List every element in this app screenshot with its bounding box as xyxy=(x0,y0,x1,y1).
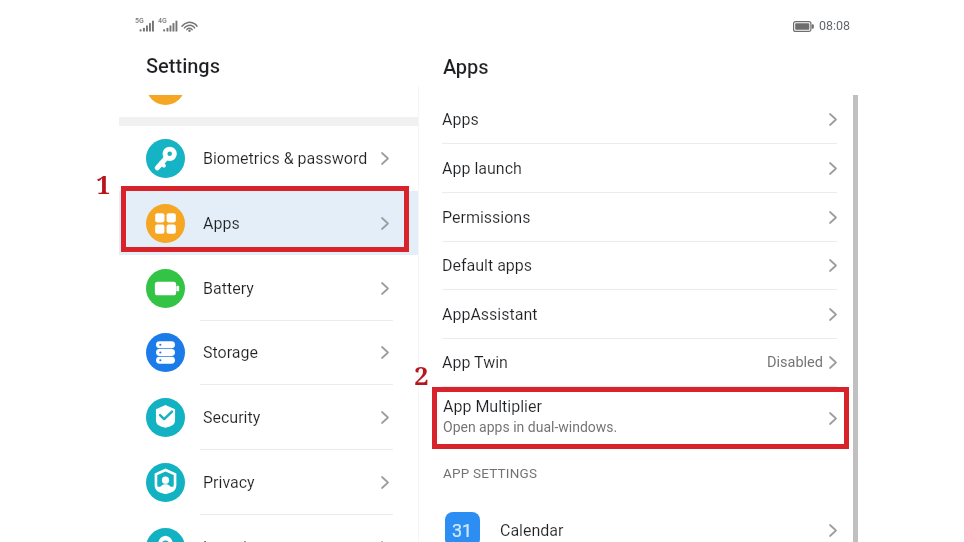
button[interactable]: Apps xyxy=(119,191,418,255)
staticText: Biometrics & password xyxy=(203,149,368,168)
staticText: Disabled xyxy=(767,354,823,371)
staticText: App launch xyxy=(442,159,522,178)
staticText: Privacy xyxy=(203,473,255,492)
staticText: Settings xyxy=(146,54,221,77)
staticText: Default apps xyxy=(442,256,533,275)
staticText: Apps xyxy=(443,55,489,78)
staticText: 2 xyxy=(414,357,429,392)
button[interactable]: Permissions xyxy=(419,193,853,241)
staticText: 5G xyxy=(135,17,144,25)
staticText: Calendar xyxy=(500,521,564,540)
staticText: 31 xyxy=(452,520,473,541)
button[interactable]: App Multiplier xyxy=(419,389,853,448)
staticText: Permissions xyxy=(442,208,531,227)
staticText: APP SETTINGS xyxy=(443,465,538,481)
staticText: Battery xyxy=(203,279,254,298)
staticText: Open apps in dual-windows. xyxy=(443,419,618,435)
button[interactable]: Security xyxy=(119,385,418,449)
staticText: 4G xyxy=(158,17,167,25)
button[interactable]: Storage xyxy=(119,320,418,384)
button[interactable]: AppAssistant xyxy=(419,290,853,338)
button[interactable]: Default apps xyxy=(419,241,853,289)
button[interactable]: Privacy xyxy=(119,450,418,514)
staticText: AppAssistant xyxy=(442,305,538,324)
staticText: 08:08 xyxy=(819,18,851,33)
button[interactable]: App Twin xyxy=(419,338,853,386)
other: Annotation 1 highlight xyxy=(121,186,409,252)
staticText: Location xyxy=(203,538,265,542)
staticText: Apps xyxy=(442,110,479,129)
staticText: Storage xyxy=(203,343,258,362)
other: Annotation 2 highlight xyxy=(432,387,849,449)
button[interactable]: Location xyxy=(119,515,418,542)
staticText: 1 xyxy=(96,166,111,201)
button[interactable]: Apps xyxy=(419,95,853,143)
staticText: App Multiplier xyxy=(443,397,542,416)
button[interactable]: App launch xyxy=(419,144,853,192)
button[interactable]: Battery xyxy=(119,256,418,320)
staticText: Security xyxy=(203,408,261,427)
staticText: Apps xyxy=(203,214,240,233)
button[interactable]: Biometrics & password xyxy=(119,126,418,190)
button[interactable]: 31 xyxy=(419,505,853,542)
staticText: App Twin xyxy=(442,353,508,372)
